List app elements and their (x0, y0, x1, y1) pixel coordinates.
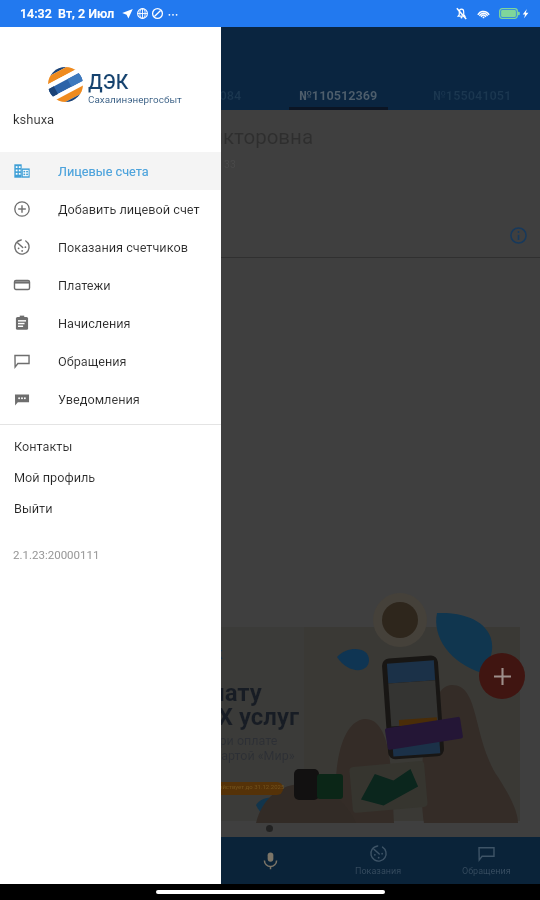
staticText: Начисления (58, 316, 131, 331)
staticText: №155041084 (163, 88, 242, 103)
staticText: г. Южно-Сахалинск, ул. Комсомольская, д.… (16, 158, 236, 170)
button[interactable]: Уведомления (0, 380, 221, 418)
staticText: Кэшбэк при оплате (164, 733, 278, 748)
button[interactable]: Добавить лицевой счет (0, 190, 221, 228)
button[interactable]: Контакты (0, 431, 221, 462)
staticText: ДЭК (88, 71, 129, 94)
button[interactable]: Voice assistant (216, 837, 324, 884)
button[interactable]: Мой профиль (0, 462, 221, 493)
staticText: Сахалинэнергосбыт (88, 94, 182, 106)
staticText: Обращения (462, 866, 511, 877)
staticText: банковской картой «Мир» (142, 748, 295, 763)
staticText: №155041084 (27, 88, 106, 103)
button[interactable]: Обращения (0, 342, 221, 380)
staticText: 2.1.23:20000111 (13, 548, 100, 561)
staticText: №110512369 (299, 88, 378, 103)
staticText: 14:32 (20, 6, 52, 21)
button[interactable]: ДЭК (20, 627, 520, 821)
staticText: Кузнецова Оксана Викторовна (16, 125, 314, 149)
staticText: Платежи (58, 278, 111, 293)
staticText: Уведомления (58, 392, 140, 407)
staticText: за ЖКХ услуг (147, 703, 300, 731)
button[interactable]: Показания (324, 837, 432, 884)
button[interactable]: №155041051 (406, 80, 538, 110)
staticText: Вт, 2 Июл (58, 6, 115, 21)
staticText: Показания счетчиков (58, 240, 188, 255)
staticText: Выйти (14, 501, 53, 516)
button[interactable]: №110512369 (270, 80, 406, 110)
staticText: kshuxa (13, 112, 55, 127)
staticText: ДЭК (196, 647, 223, 662)
button[interactable]: Add account (479, 653, 525, 699)
staticText: Показания (355, 866, 402, 877)
button[interactable]: Обращения (432, 837, 540, 884)
button[interactable]: №155041084 (0, 80, 134, 110)
button[interactable]: Начисления (0, 304, 221, 342)
staticText: Предложение действует до 31.12.2025 (175, 783, 285, 790)
button[interactable]: Показания счетчиков (0, 228, 221, 266)
staticText: Снизьте плату (100, 679, 262, 707)
staticText: Добавить лицевой счет (58, 202, 200, 217)
button[interactable]: Платежи (0, 266, 221, 304)
staticText: Лицевые счета (58, 164, 149, 179)
button[interactable]: Лицевые счета (0, 152, 221, 190)
button[interactable]: Info (506, 223, 530, 247)
button[interactable]: №155041084 (134, 80, 270, 110)
button[interactable]: Выйти (0, 493, 221, 524)
staticText: Обращения (58, 354, 127, 369)
staticText: Мой профиль (14, 470, 96, 485)
staticText: Контакты (14, 439, 73, 454)
staticText: №155041051 (433, 88, 512, 103)
